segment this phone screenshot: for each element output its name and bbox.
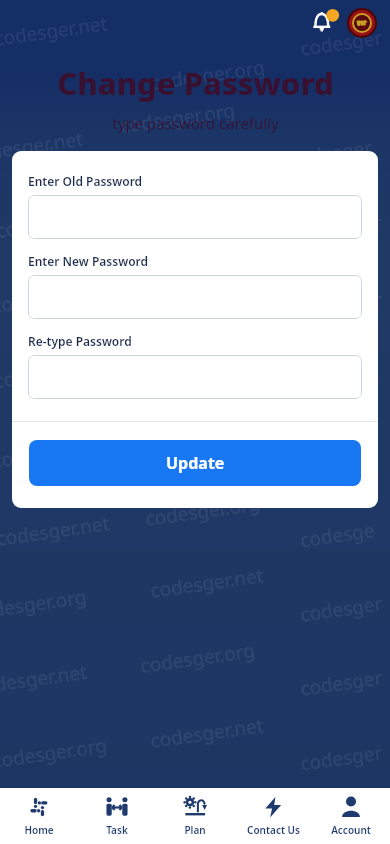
staticText: Change Password [57, 62, 334, 104]
staticText: type password carefully [112, 113, 279, 133]
staticText: codesger.net [149, 562, 265, 604]
staticText: codesger.org [0, 732, 109, 774]
staticText: codesger.net [0, 510, 111, 552]
staticText: codesger.net [0, 10, 109, 52]
button[interactable]: Update [29, 440, 361, 486]
button[interactable]: Home [0, 788, 78, 844]
staticText: desger.org [0, 583, 88, 622]
button[interactable] [28, 195, 362, 239]
staticText: Task [106, 823, 128, 837]
staticText: Update [166, 452, 225, 474]
staticText: codesge [299, 517, 376, 553]
staticText: codesger [299, 590, 384, 628]
staticText: codesger.org [0, 202, 113, 244]
staticText: codesger [299, 286, 384, 324]
staticText: codesger [299, 664, 384, 702]
staticText: codesge [299, 440, 376, 476]
staticText: desger.net [0, 126, 85, 164]
staticText: desger.net [0, 659, 89, 697]
button[interactable]: VIP profile [346, 7, 378, 39]
staticText: Plan [184, 823, 206, 837]
staticText: codesger.org [119, 97, 237, 139]
staticText: codesger.org [149, 54, 267, 96]
staticText: codesger.net [139, 332, 255, 374]
staticText: codesger [299, 739, 384, 777]
staticText: codesger.org [139, 637, 257, 679]
staticText: Enter New Password [28, 253, 149, 269]
staticText: codesger.net [149, 254, 265, 296]
staticText: codesger [299, 209, 384, 247]
staticText: codesger.net [149, 712, 265, 754]
staticText: Home [24, 823, 54, 837]
button[interactable] [28, 355, 362, 399]
staticText: codesge [304, 363, 381, 399]
staticText: codesger.net [149, 410, 265, 452]
staticText: codesger [299, 24, 384, 62]
button[interactable]: Task [78, 788, 156, 844]
staticText: codesger [289, 134, 374, 172]
button[interactable]: Account [312, 788, 390, 844]
staticText: codesger.org [0, 352, 111, 394]
button[interactable]: Plan [156, 788, 234, 844]
staticText: codesger.net [144, 180, 260, 222]
staticText: codesger.org [144, 490, 262, 532]
staticText: Re-type Password [28, 333, 132, 349]
button[interactable]: Contact Us [234, 788, 312, 844]
staticText: codesger.org [0, 277, 109, 319]
staticText: codesger.org [0, 432, 109, 474]
staticText: Account [331, 823, 371, 837]
button[interactable]: Notifications [308, 6, 342, 40]
staticText: Enter Old Password [28, 173, 143, 189]
staticText: Contact Us [247, 823, 300, 837]
button[interactable] [28, 275, 362, 319]
